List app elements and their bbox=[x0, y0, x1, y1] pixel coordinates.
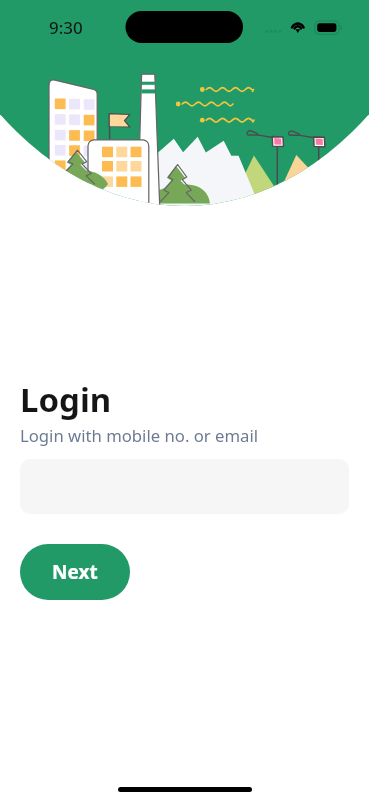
staticText: 9:30 bbox=[49, 16, 83, 39]
button[interactable]: Next bbox=[20, 544, 130, 600]
staticText: Login with mobile no. or email bbox=[20, 424, 259, 447]
staticText: Login bbox=[20, 377, 112, 422]
staticText: Next bbox=[52, 559, 98, 585]
